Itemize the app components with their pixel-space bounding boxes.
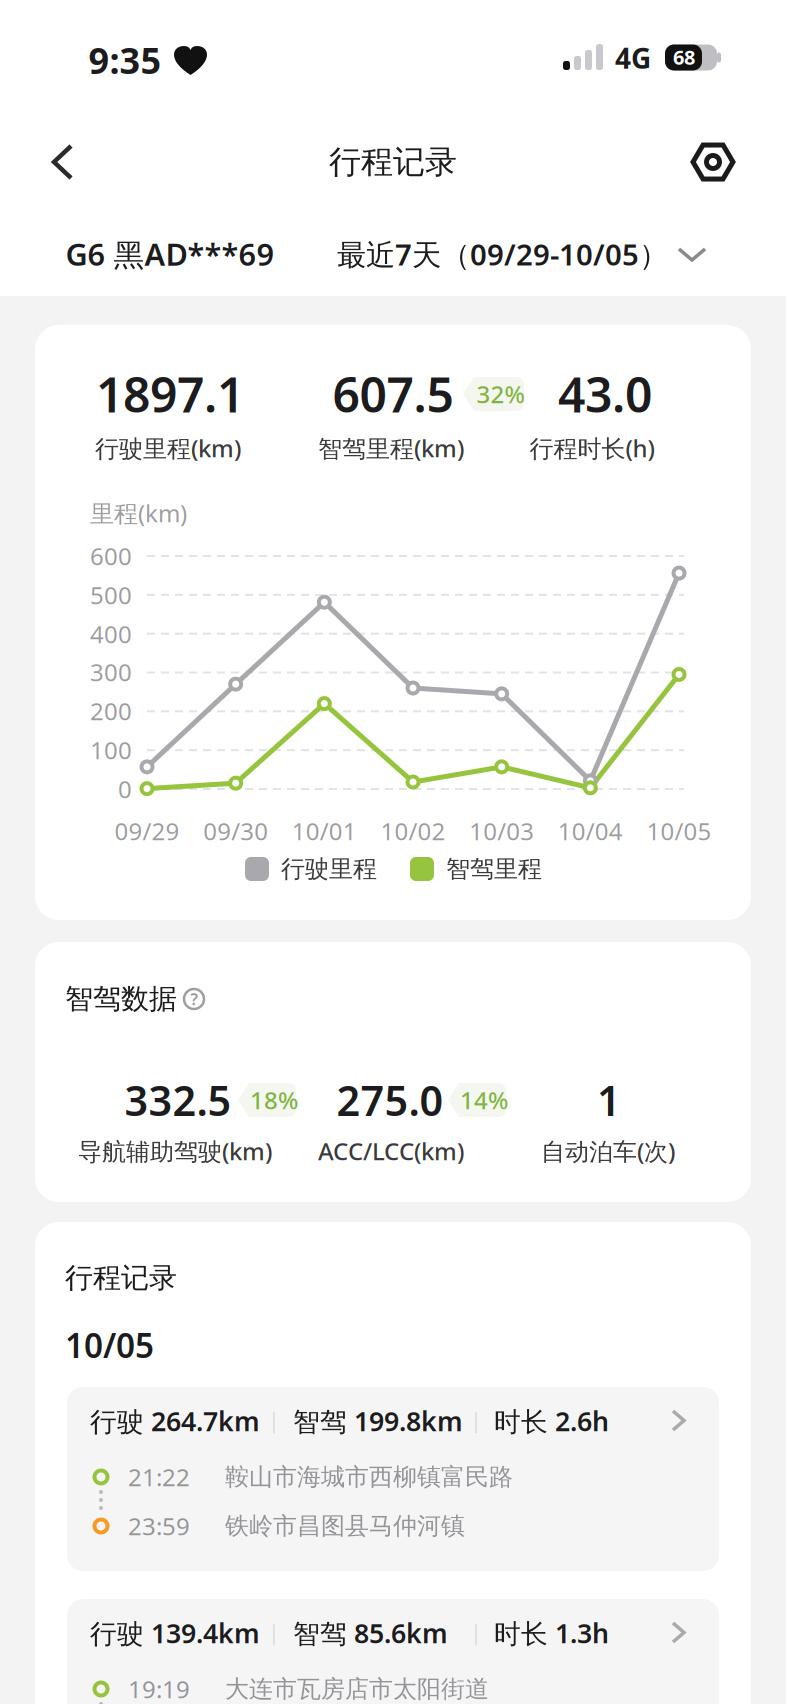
staticText: 智驾里程 bbox=[446, 854, 542, 884]
staticText: 10/04 bbox=[558, 815, 623, 847]
staticText: 19:19 bbox=[128, 1673, 190, 1704]
staticText: ACC/LCC(km) bbox=[318, 1135, 464, 1167]
staticText: | bbox=[268, 1618, 280, 1646]
staticText: | bbox=[470, 1618, 482, 1646]
staticText: 行程记录 bbox=[329, 142, 457, 182]
staticText: | bbox=[470, 1406, 482, 1434]
staticText: 行驶里程(km) bbox=[95, 432, 241, 464]
button[interactable]: Settings bbox=[691, 140, 735, 184]
staticText: 14% bbox=[460, 1084, 508, 1116]
staticText: 大连市瓦房店市太阳街道 bbox=[225, 1674, 489, 1704]
button[interactable]: Back bbox=[41, 140, 85, 184]
staticText: 10/01 bbox=[292, 815, 357, 847]
staticText: 智驾 85.6km bbox=[293, 1615, 448, 1651]
button[interactable]: 行驶 264.7km bbox=[67, 1387, 719, 1571]
staticText: 10/05 bbox=[65, 1323, 154, 1367]
button[interactable]: 最近7天（09/29-10/05） bbox=[337, 234, 707, 273]
staticText: 1897.1 bbox=[96, 362, 244, 426]
staticText: 300 bbox=[90, 656, 132, 688]
staticText: 4G bbox=[615, 39, 651, 77]
button[interactable]: 智驾数据说明 bbox=[179, 984, 209, 1014]
staticText: 100 bbox=[90, 734, 132, 766]
staticText: 09/29 bbox=[114, 815, 179, 847]
staticText: 18% bbox=[250, 1084, 298, 1116]
staticText: 0 bbox=[118, 773, 132, 805]
staticText: 自动泊车(次) bbox=[541, 1135, 675, 1167]
staticText: 智驾数据 bbox=[65, 982, 177, 1016]
staticText: 智驾里程(km) bbox=[318, 432, 464, 464]
staticText: 43.0 bbox=[558, 362, 652, 426]
button[interactable]: G6 黑AD***69 bbox=[65, 234, 274, 274]
staticText: G6 黑AD***69 bbox=[65, 234, 274, 274]
staticText: 21:22 bbox=[128, 1461, 190, 1493]
staticText: 607.5 bbox=[332, 362, 453, 426]
staticText: 68 bbox=[673, 44, 695, 70]
staticText: 行程记录 bbox=[65, 1261, 177, 1295]
staticText: 10/05 bbox=[646, 815, 711, 847]
button[interactable]: 行驶 139.4km bbox=[67, 1599, 719, 1704]
staticText: 智驾 199.8km bbox=[293, 1403, 463, 1439]
staticText: | bbox=[268, 1406, 280, 1434]
staticText: 32% bbox=[476, 378, 524, 410]
staticText: 400 bbox=[90, 618, 132, 650]
staticText: 时长 2.6h bbox=[494, 1403, 609, 1439]
staticText: 275.0 bbox=[336, 1073, 443, 1127]
staticText: 导航辅助驾驶(km) bbox=[78, 1135, 272, 1167]
staticText: 行驶 264.7km bbox=[90, 1403, 260, 1439]
staticText: 9:35 bbox=[88, 36, 161, 84]
staticText: 10/02 bbox=[380, 815, 445, 847]
staticText: ? bbox=[190, 988, 197, 1010]
staticText: 行程时长(h) bbox=[529, 432, 654, 464]
staticText: 1 bbox=[597, 1073, 621, 1127]
staticText: 行驶里程 bbox=[281, 854, 377, 884]
staticText: 最近7天（09/29-10/05） bbox=[337, 234, 668, 273]
staticText: 600 bbox=[90, 540, 132, 572]
staticText: 200 bbox=[90, 695, 132, 727]
staticText: 鞍山市海城市西柳镇富民路 bbox=[225, 1462, 513, 1492]
staticText: 23:59 bbox=[128, 1510, 190, 1542]
staticText: 里程(km) bbox=[90, 497, 187, 529]
staticText: 10/03 bbox=[469, 815, 534, 847]
staticText: 332.5 bbox=[124, 1073, 231, 1127]
staticText: 时长 1.3h bbox=[494, 1615, 609, 1651]
staticText: 500 bbox=[90, 579, 132, 611]
staticText: 行驶 139.4km bbox=[90, 1615, 260, 1651]
staticText: 铁岭市昌图县马仲河镇 bbox=[225, 1511, 465, 1541]
staticText: 09/30 bbox=[203, 815, 268, 847]
